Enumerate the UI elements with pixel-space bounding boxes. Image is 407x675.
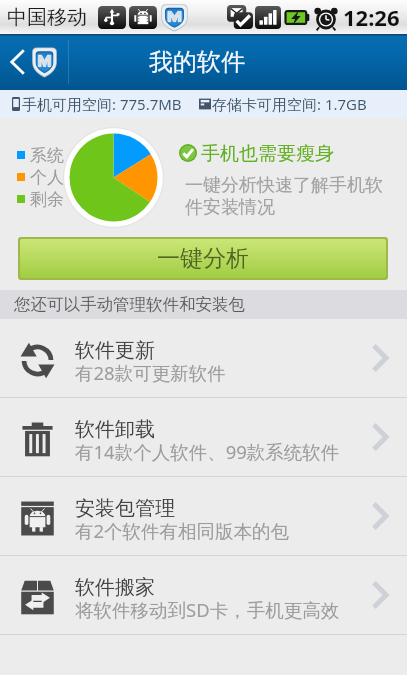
staticText: 将软件移动到SD卡，手机更高效 [75,597,340,622]
staticText: 有28款可更新软件 [75,360,226,385]
staticText: 剩余 [30,189,64,210]
staticText: 有2个软件有相同版本的包 [75,518,290,543]
staticText: 有14款个人软件、99款系统软件 [75,439,340,464]
button[interactable]: 软件搬家 [0,556,407,634]
button[interactable]: 一键分析 [20,239,386,278]
staticText: 手机也需要瘦身 [201,142,334,166]
staticText: 您还可以手动管理软件和安装包 [14,294,245,315]
button[interactable]: 安装包管理 [0,477,407,555]
staticText: 软件更新 [75,338,155,363]
staticText: 中国移动 [7,5,87,30]
staticText: 一键分析快速了解手机软件安装情况 [185,174,391,218]
staticText: 系统 [30,145,64,166]
button[interactable]: Back [0,34,68,90]
staticText: 一键分析 [157,244,249,273]
staticText: 存储卡可用空间: 1.7GB [212,94,367,114]
staticText: 软件卸载 [75,417,155,442]
staticText: 安装包管理 [75,496,175,521]
staticText: 12:26 [343,2,400,32]
staticText: 个人 [30,167,64,188]
button[interactable]: 软件更新 [0,319,407,397]
staticText: 手机可用空间: 775.7MB [22,94,182,114]
staticText: 我的软件 [149,47,245,77]
staticText: 软件搬家 [75,575,155,600]
button[interactable]: 软件卸载 [0,398,407,476]
